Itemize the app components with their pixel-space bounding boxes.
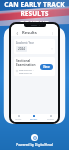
button[interactable]: Profile xyxy=(42,114,58,122)
staticText: View xyxy=(43,65,50,69)
button[interactable]: Sectional Examination xyxy=(14,57,55,76)
staticText: 2024 xyxy=(18,47,25,51)
staticText: CAN EARLY TRACK RESULTS xyxy=(4,0,65,18)
button[interactable]: Academic Year xyxy=(14,39,55,54)
button[interactable]: More options xyxy=(49,30,55,36)
button[interactable]: Home xyxy=(11,114,26,122)
button[interactable]: View xyxy=(40,64,53,70)
button[interactable]: Results xyxy=(26,114,42,122)
staticText: Sectional Examination xyxy=(16,59,38,67)
staticText: OF YOUR CHILDREN xyxy=(4,19,65,26)
staticText: Academic Year xyxy=(16,41,34,45)
staticText: Powered by DigitalHead xyxy=(0,143,69,147)
staticText: Home xyxy=(15,118,22,121)
staticText: Profile xyxy=(47,118,54,121)
button[interactable]: Back xyxy=(14,30,20,36)
staticText: Results xyxy=(30,118,38,121)
button[interactable]: App logo xyxy=(31,134,38,141)
staticText: 2024-04-01 - 2024-04-10 xyxy=(19,68,38,74)
staticText: Results xyxy=(22,30,37,36)
